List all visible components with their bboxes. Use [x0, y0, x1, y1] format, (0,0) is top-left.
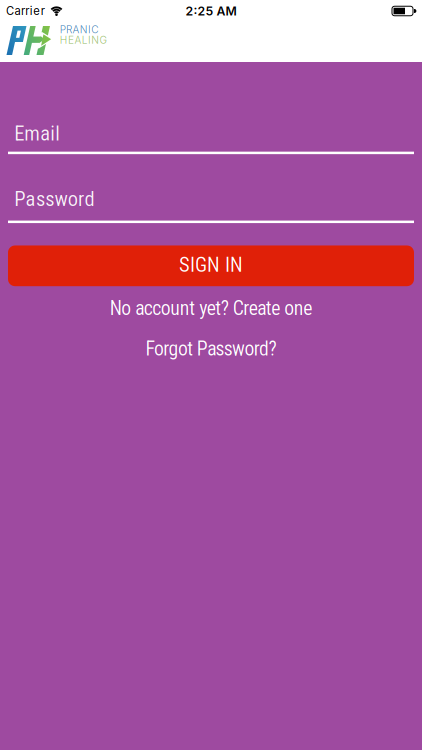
staticText: Carrier	[6, 4, 45, 18]
staticText: HEALING	[60, 34, 108, 46]
staticText: No account yet? Create one	[110, 297, 312, 320]
staticText: 2:25 AM	[185, 4, 236, 18]
staticText: SIGN IN	[179, 253, 243, 277]
button[interactable]: Password	[0, 187, 422, 223]
staticText: Password	[14, 187, 94, 211]
staticText: Email	[14, 121, 60, 145]
button[interactable]: Forgot Password?	[0, 337, 422, 360]
button[interactable]: No account yet? Create one	[0, 297, 422, 320]
button[interactable]: SIGN IN	[8, 245, 414, 286]
staticText: PRANIC	[60, 23, 98, 36]
button[interactable]: Email	[0, 121, 422, 154]
staticText: Forgot Password?	[146, 337, 276, 360]
